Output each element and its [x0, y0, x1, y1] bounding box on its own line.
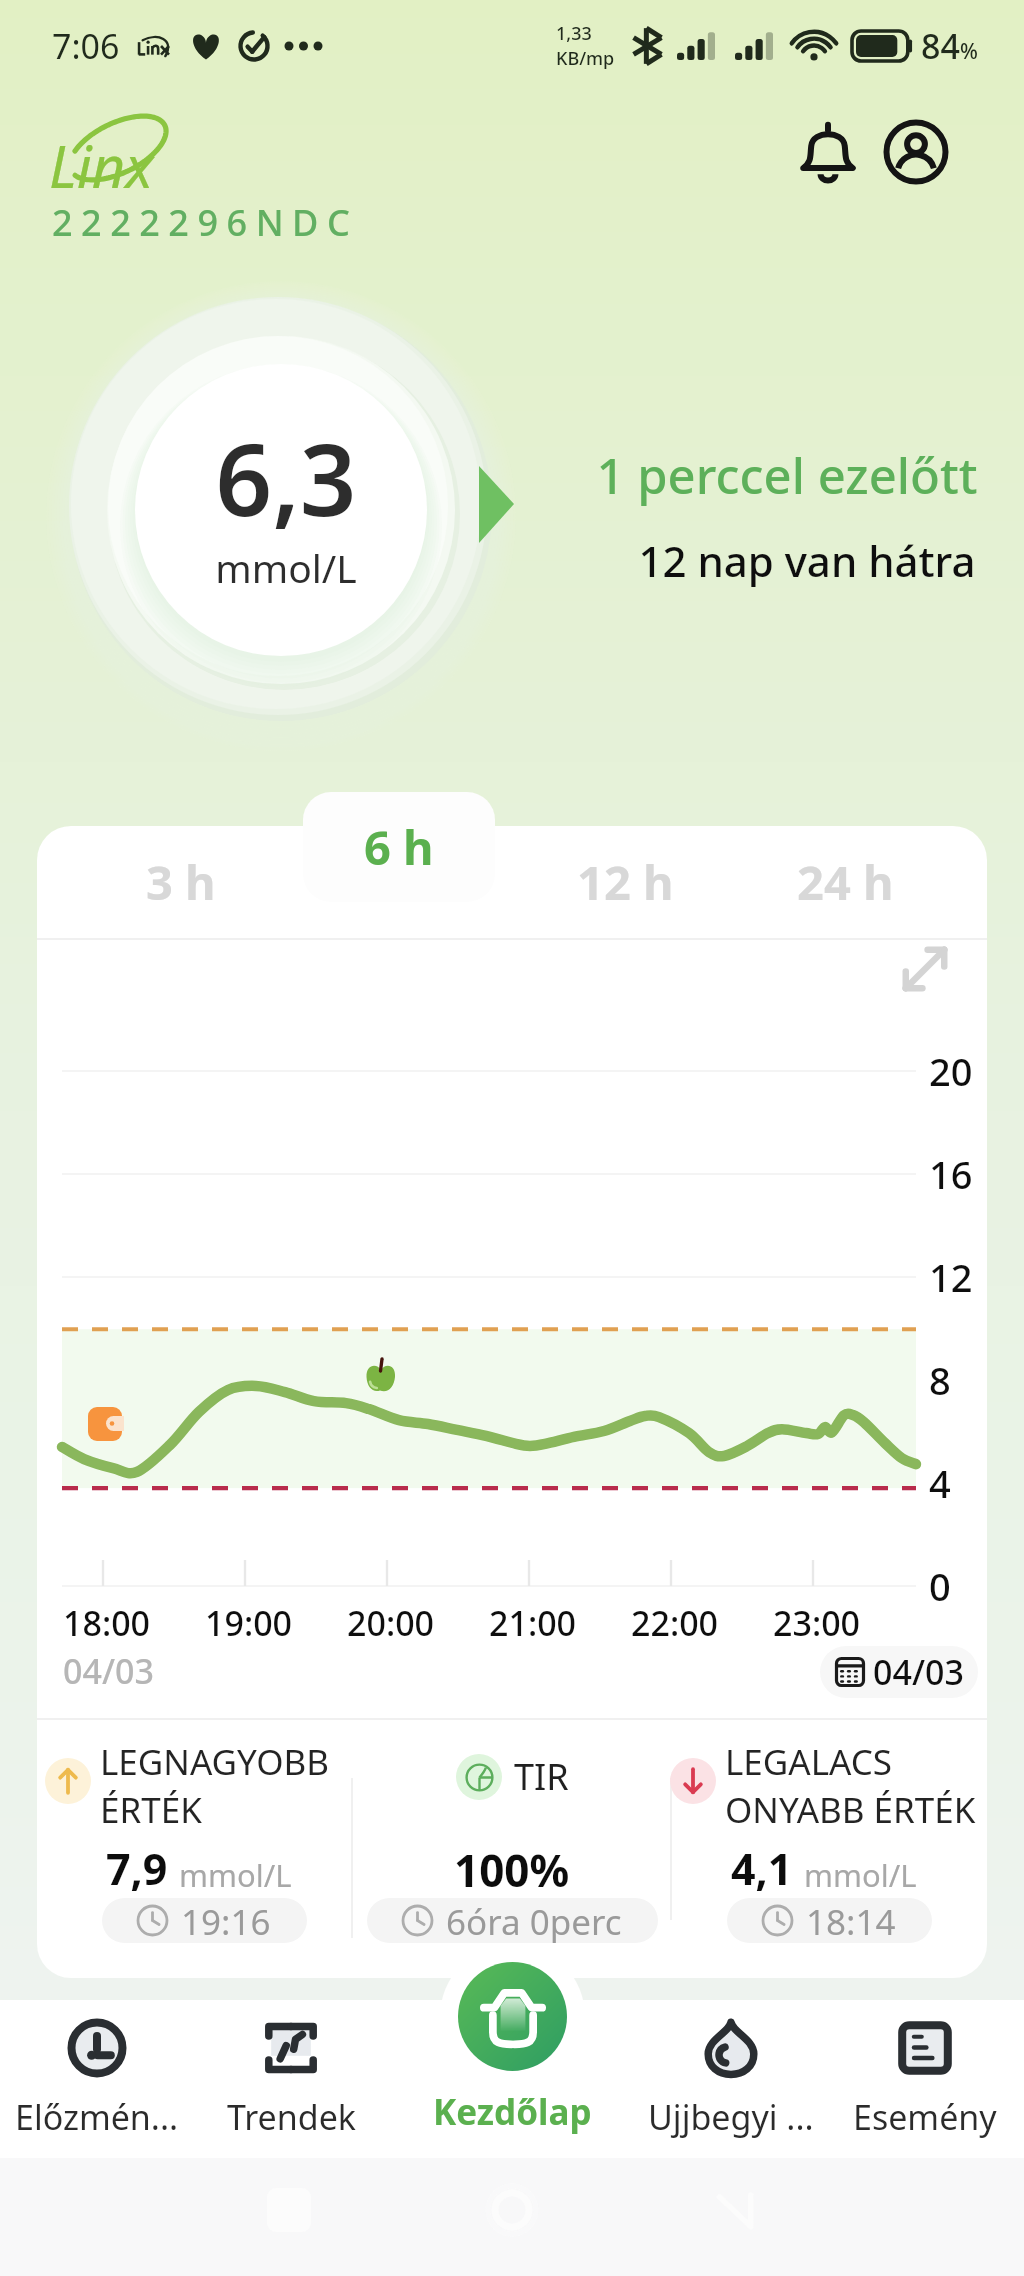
- staticText: 4: [929, 1457, 951, 1509]
- staticText: 04/03: [63, 1648, 154, 1694]
- staticText: 23:00: [773, 1600, 861, 1646]
- staticText: 0: [929, 1560, 951, 1612]
- button[interactable]: Értesítések: [785, 109, 871, 195]
- staticText: Előzmén...: [15, 2094, 179, 2140]
- staticText: 84: [921, 23, 960, 69]
- staticText: 18:00: [63, 1600, 151, 1646]
- staticText: 12: [929, 1251, 973, 1303]
- staticText: Linx: [49, 126, 154, 205]
- staticText: 8: [929, 1354, 951, 1406]
- button[interactable]: LEGALACS ONYABB ÉRTÉK: [662, 1720, 976, 1978]
- staticText: TIR: [514, 1752, 569, 1801]
- button[interactable]: Kezdőlap: [392, 2040, 632, 2136]
- button[interactable]: Előzmén...: [0, 2010, 197, 2140]
- staticText: LEGNAGYOBB ÉRTÉK: [100, 1738, 329, 1833]
- staticText: mmol/L: [146, 541, 426, 594]
- staticText: 7,9: [106, 1839, 168, 1898]
- staticText: LEGALACS ONYABB ÉRTÉK: [725, 1738, 976, 1833]
- staticText: 18:14: [806, 1898, 896, 1943]
- staticText: 12 nap van hátra: [604, 532, 1010, 589]
- staticText: 24 h: [797, 850, 894, 914]
- staticText: Esemény: [853, 2094, 997, 2140]
- staticText: 19:16: [181, 1898, 271, 1943]
- button[interactable]: TIR: [355, 1720, 669, 1978]
- staticText: 2222296NDC: [52, 198, 359, 247]
- staticText: mmol/L: [179, 1854, 292, 1896]
- staticText: 3 h: [146, 850, 216, 914]
- staticText: mmol/L: [804, 1854, 917, 1896]
- staticText: 100%: [454, 1840, 570, 1900]
- staticText: Kezdőlap: [433, 2088, 592, 2136]
- staticText: 7:06: [52, 23, 120, 69]
- staticText: 20: [929, 1045, 973, 1097]
- staticText: 16: [929, 1148, 973, 1200]
- button[interactable]: Trendek: [191, 2010, 391, 2140]
- button[interactable]: 04/03: [820, 1646, 978, 1698]
- staticText: 6óra 0perc: [446, 1898, 622, 1943]
- button[interactable]: 3 h: [76, 826, 286, 938]
- button[interactable]: Kezdőlap: [458, 1962, 567, 2071]
- staticText: 4,1: [731, 1839, 793, 1898]
- staticText: 1 perccel ezelőtt: [584, 442, 990, 509]
- staticText: 20:00: [347, 1600, 435, 1646]
- button[interactable]: 12 h: [520, 826, 730, 938]
- staticText: Ujjbegyi ...: [648, 2094, 814, 2140]
- staticText: 1,33: [556, 21, 592, 46]
- staticText: 21:00: [489, 1600, 577, 1646]
- button[interactable]: LEGNAGYOBB ÉRTÉK: [37, 1720, 351, 1978]
- staticText: %: [960, 37, 978, 66]
- staticText: Trendek: [227, 2094, 356, 2140]
- staticText: 22:00: [631, 1600, 719, 1646]
- staticText: 6,3: [146, 410, 426, 545]
- staticText: KB/mp: [556, 46, 615, 71]
- button[interactable]: Profil: [873, 109, 959, 195]
- button[interactable]: Esemény: [825, 2010, 1024, 2140]
- staticText: 04/03: [873, 1649, 964, 1695]
- button[interactable]: Ujjbegyi ...: [631, 2010, 831, 2140]
- staticText: 19:00: [205, 1600, 293, 1646]
- button[interactable]: 6 h: [303, 792, 495, 902]
- staticText: 6 h: [364, 815, 434, 879]
- button[interactable]: Teljes képernyő: [882, 926, 968, 1012]
- staticText: 12 h: [577, 850, 674, 914]
- button[interactable]: 24 h: [740, 826, 950, 938]
